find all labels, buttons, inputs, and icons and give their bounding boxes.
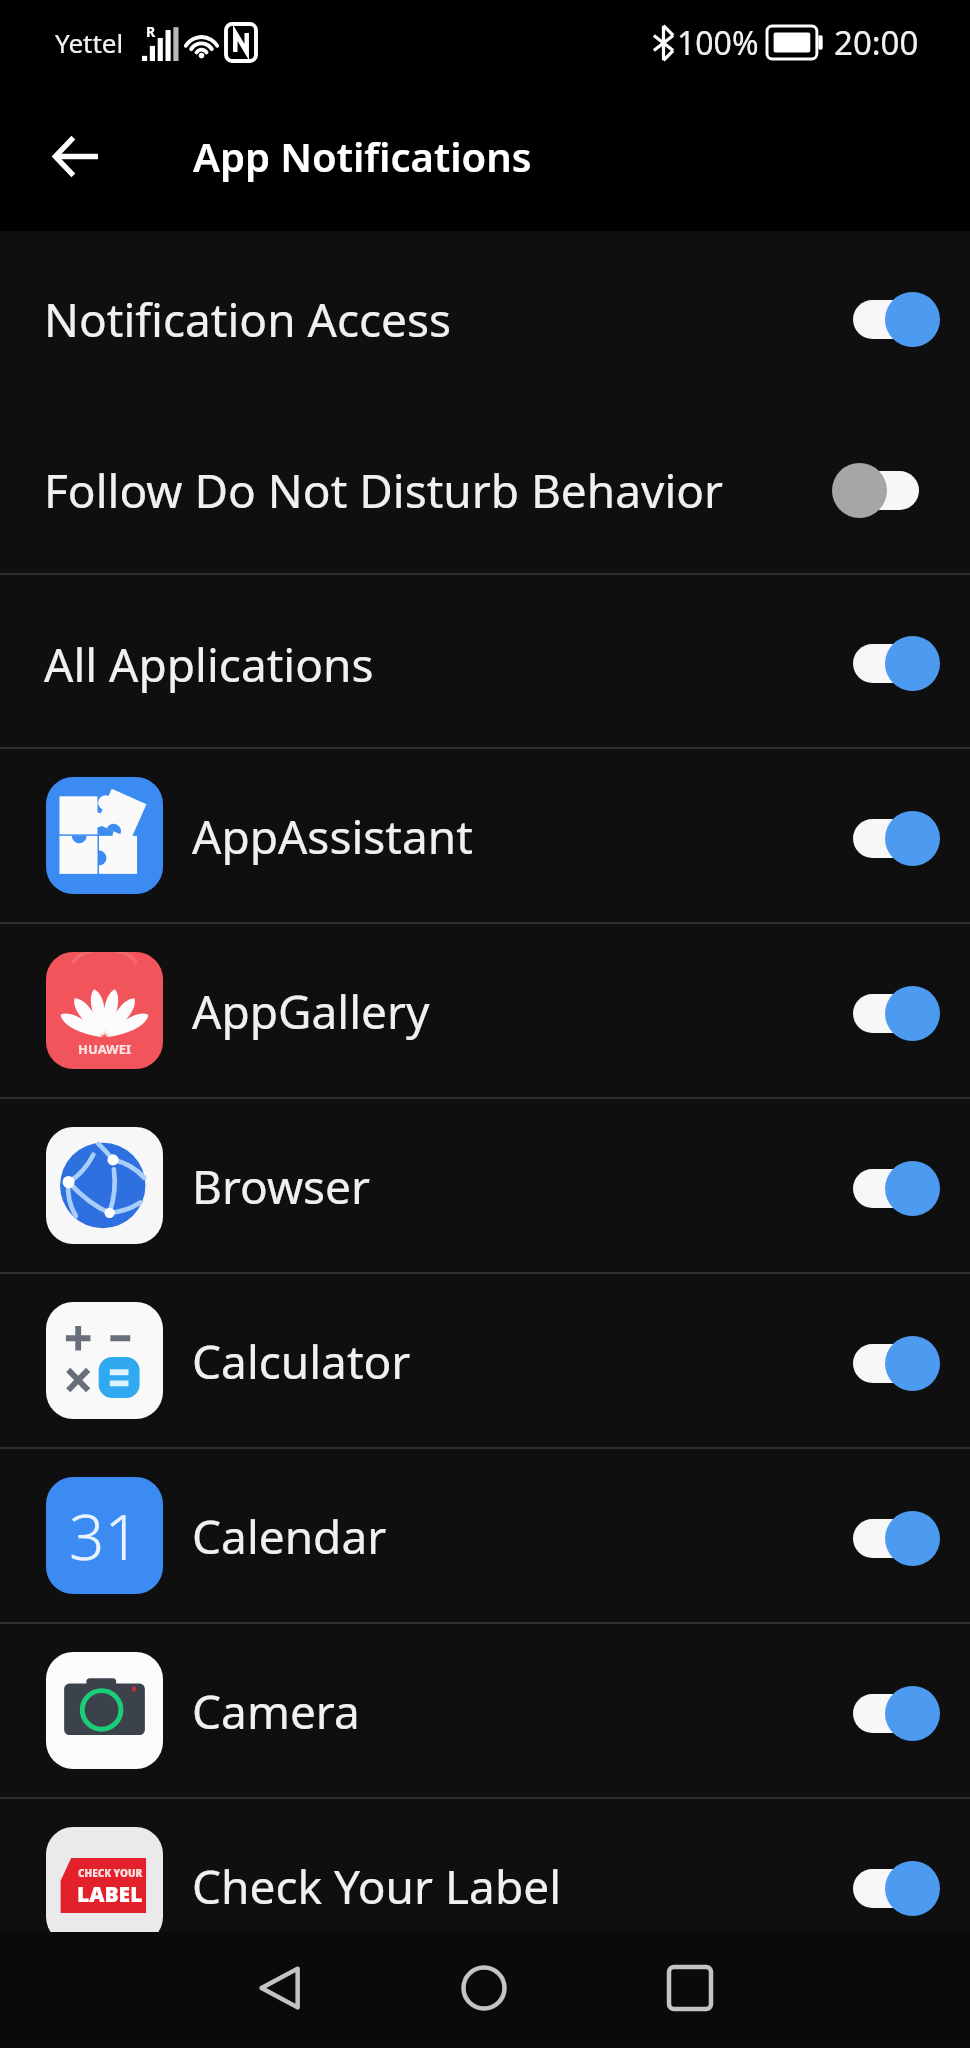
button[interactable]: HUAWEI (0, 924, 970, 1097)
button[interactable]: Toggle on (842, 279, 950, 355)
staticText: Follow Do Not Disturb Behavior (44, 459, 842, 522)
staticText: App Notifications (193, 129, 532, 183)
staticText: All Applications (44, 633, 842, 696)
staticText: 20:00 (834, 20, 919, 65)
button[interactable]: Camera (0, 1624, 970, 1797)
staticText: AppGallery (192, 980, 842, 1043)
staticText: LABEL (77, 1880, 143, 1909)
button[interactable]: Back (28, 108, 124, 204)
button[interactable]: Back (200, 1932, 360, 2044)
button[interactable]: Toggle on (842, 973, 950, 1049)
button[interactable]: Follow Do Not Disturb Behavior (0, 402, 970, 573)
staticText: HUAWEI (78, 1040, 132, 1058)
button[interactable]: AppAssistant (0, 749, 970, 922)
button[interactable]: Recents (610, 1932, 770, 2044)
staticText: Browser (192, 1155, 842, 1218)
button[interactable]: Home (404, 1932, 564, 2044)
button[interactable]: 31 (0, 1449, 970, 1622)
staticText: Yettel (55, 25, 124, 60)
button[interactable]: Toggle on (842, 1848, 950, 1924)
button[interactable]: Toggle on (842, 1673, 950, 1749)
staticText: Camera (192, 1680, 842, 1743)
button[interactable]: Toggle on (842, 1148, 950, 1224)
button[interactable]: All Applications (0, 575, 970, 747)
button[interactable]: Browser (0, 1099, 970, 1272)
staticText: 31 (69, 1494, 140, 1578)
staticText: Calendar (192, 1505, 842, 1568)
staticText: Notification Access (44, 288, 842, 351)
button[interactable]: Toggle on (842, 1498, 950, 1574)
staticText: R (146, 22, 156, 41)
button[interactable]: Calculator (0, 1274, 970, 1447)
staticText: CHECK YOUR (78, 1866, 143, 1880)
button[interactable]: Notification Access (0, 231, 970, 402)
staticText: 100% (677, 21, 759, 65)
button[interactable]: Toggle on (842, 1323, 950, 1399)
button[interactable]: CHECK YOUR (0, 1799, 970, 1972)
staticText: AppAssistant (192, 805, 842, 868)
button[interactable]: Toggle on (842, 798, 950, 874)
button[interactable]: Toggle on (842, 623, 950, 699)
button[interactable]: Toggle off (842, 450, 950, 526)
staticText: Calculator (192, 1330, 842, 1393)
staticText: Check Your Label (192, 1855, 842, 1918)
